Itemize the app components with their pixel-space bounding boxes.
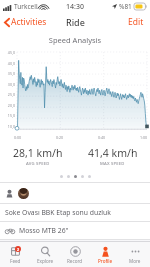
other: Athlete avatar	[18, 188, 29, 199]
staticText: 25,0	[1, 92, 15, 97]
staticText: Turkcell	[14, 2, 38, 11]
staticText: Profile	[98, 258, 113, 264]
button[interactable]: Achievements	[0, 183, 150, 203]
staticText: Ride	[66, 16, 85, 28]
staticText: 2	[17, 247, 20, 252]
staticText: MAX SPEED	[100, 161, 125, 167]
button[interactable]: Edit	[126, 14, 146, 30]
staticText: 15,0	[1, 113, 15, 118]
staticText: 28,1 km/h	[13, 146, 63, 160]
staticText: More	[129, 258, 141, 264]
button[interactable]: Explore	[30, 242, 60, 267]
button[interactable]: Activities	[3, 14, 48, 30]
staticText: Mosso MTB 26"	[19, 226, 69, 235]
staticText: Explore	[37, 258, 54, 264]
button[interactable]: Page 1	[60, 175, 63, 178]
button[interactable]: Page 5	[88, 175, 91, 178]
staticText: 35,0	[1, 71, 15, 76]
staticText: 0:20	[56, 135, 64, 140]
staticText: 41,4 km/h	[88, 146, 138, 160]
staticText: 0:40	[98, 135, 106, 140]
staticText: Soke Ovası BBK Etap sonu duzluk	[5, 208, 111, 217]
staticText: Feed	[10, 258, 21, 264]
other: Achievements	[5, 189, 14, 198]
staticText: Edit	[128, 16, 144, 28]
button[interactable]: Profile	[90, 242, 120, 267]
staticText: 1:00	[140, 135, 148, 140]
staticText: 45,0	[1, 50, 15, 55]
staticText: 30,0	[1, 82, 15, 87]
staticText: 14:30	[66, 2, 84, 12]
staticText: 0:00	[14, 135, 22, 140]
staticText: 40,0	[1, 61, 15, 66]
button[interactable]: Soke Ovası BBK Etap sonu duzluk	[0, 204, 150, 221]
button[interactable]: More	[120, 242, 150, 267]
button[interactable]: Mosso MTB 26"	[0, 222, 150, 239]
staticText: Speed Analysis	[0, 35, 150, 45]
button[interactable]: Page 4	[81, 175, 84, 178]
staticText: 10,0	[1, 124, 15, 129]
staticText: Raln Nasaar Esnb	[5, 254, 64, 264]
staticText: AVG SPEED	[26, 161, 50, 167]
staticText: Activities	[11, 16, 47, 28]
button[interactable]: Raln Nasaar Esnb	[0, 253, 150, 264]
staticText: 20,0	[1, 103, 15, 108]
button[interactable]: Feed	[0, 242, 30, 267]
button[interactable]: Record	[60, 242, 90, 267]
staticText: Record	[67, 258, 83, 264]
button[interactable]: Page 2	[67, 175, 70, 178]
staticText: %81	[119, 2, 132, 11]
staticText: SEGMENTS	[5, 243, 35, 250]
button[interactable]: Page 3	[74, 175, 77, 178]
